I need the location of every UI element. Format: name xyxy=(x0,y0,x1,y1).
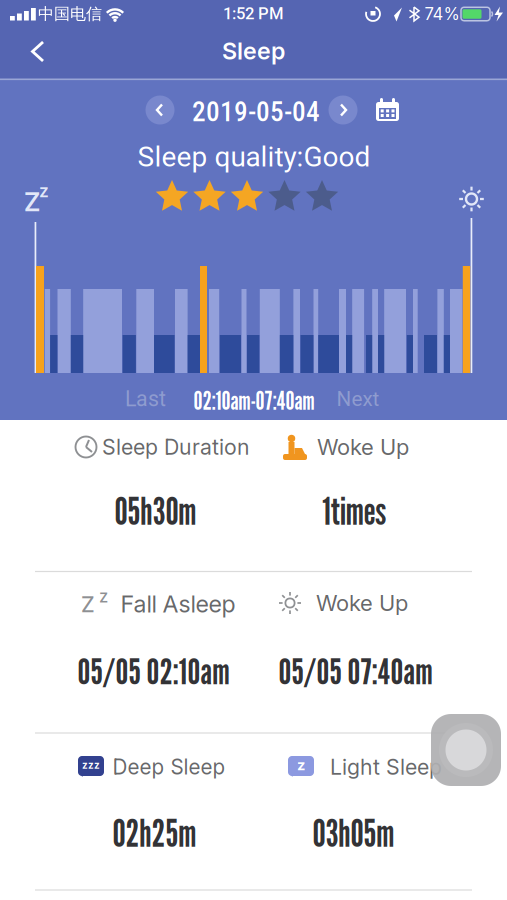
staticText: Next xyxy=(336,387,379,411)
staticText: 中国电信 xyxy=(38,4,102,24)
staticText: zzz xyxy=(82,759,100,771)
staticText: 74% xyxy=(424,4,459,24)
staticText: Woke Up xyxy=(317,434,409,460)
button[interactable] xyxy=(431,714,501,786)
staticText: 1times xyxy=(322,489,386,533)
button[interactable] xyxy=(27,39,49,64)
button[interactable]: Next xyxy=(336,387,379,411)
staticText: z xyxy=(297,756,305,774)
staticText: 1:52 PM xyxy=(223,4,284,23)
staticText: z xyxy=(39,180,49,201)
button[interactable] xyxy=(374,97,400,123)
staticText: Sleep xyxy=(222,37,285,65)
staticText: z xyxy=(99,586,108,607)
staticText: Light Sleep xyxy=(330,754,442,780)
staticText: Z xyxy=(24,187,40,217)
button[interactable] xyxy=(145,95,174,124)
staticText: 02h25m xyxy=(112,811,196,855)
staticText: 03h05m xyxy=(312,811,394,855)
button[interactable]: Last xyxy=(125,386,166,411)
button[interactable] xyxy=(328,95,357,124)
staticText: Sleep quality:Good xyxy=(137,141,370,173)
staticText: Fall Asleep xyxy=(120,590,235,618)
staticText: Last xyxy=(125,386,166,411)
staticText: 02:10am-07:40am xyxy=(193,385,314,416)
staticText: 05/05 02:10am xyxy=(77,649,229,693)
staticText: Woke Up xyxy=(316,590,408,616)
staticText: 05h30m xyxy=(114,489,196,533)
staticText: Z xyxy=(81,592,95,617)
staticText: Deep Sleep xyxy=(112,754,225,779)
staticText: 05/05 07:40am xyxy=(278,649,432,693)
staticText: Sleep Duration xyxy=(102,434,250,460)
staticText: 2019-05-04 xyxy=(192,96,320,128)
button[interactable]: 2019-05-04 xyxy=(192,96,320,128)
